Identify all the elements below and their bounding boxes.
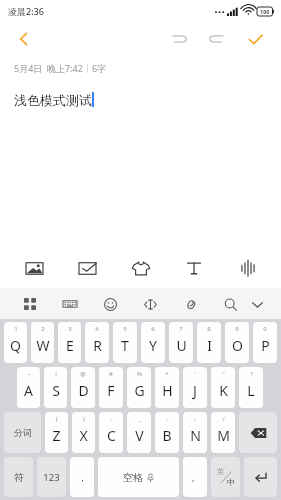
- button[interactable]: 。: [183, 457, 207, 497]
- staticText: J: [193, 381, 197, 400]
- staticText: /: [222, 415, 225, 423]
- button[interactable]: @: [71, 367, 95, 408]
- staticText: 0: [263, 325, 267, 333]
- staticText: 6: [151, 325, 155, 333]
- button[interactable]: Back: [8, 23, 40, 55]
- button[interactable]: Language: [211, 457, 240, 497]
- button[interactable]: Collapse keyboard: [243, 290, 271, 318]
- staticText: P: [261, 336, 270, 355]
- staticText: 5月4日 晚上7:42: [14, 62, 83, 74]
- button[interactable]: (: [45, 412, 68, 453]
- button[interactable]: :: [155, 412, 179, 453]
- button[interactable]: Search: [210, 289, 250, 319]
- button[interactable]: 9: [225, 322, 249, 363]
- button[interactable]: Done: [239, 23, 271, 55]
- button[interactable]: ": [211, 367, 235, 408]
- button[interactable]: Backspace: [239, 412, 277, 453]
- staticText: 7: [179, 325, 183, 333]
- staticText: ': [194, 370, 196, 378]
- button[interactable]: 2: [31, 322, 54, 363]
- button[interactable]: Text format: [174, 248, 214, 288]
- staticText: 9: [235, 325, 239, 333]
- staticText: Y: [149, 336, 157, 355]
- staticText: 123: [43, 471, 60, 484]
- button[interactable]: 空格: [98, 457, 179, 497]
- staticText: 1: [14, 325, 18, 333]
- button[interactable]: ~: [17, 367, 40, 408]
- staticText: 凌晨2:36: [8, 5, 44, 17]
- staticText: C: [107, 426, 116, 445]
- button[interactable]: *: [155, 367, 179, 408]
- button[interactable]: %: [127, 367, 151, 408]
- button[interactable]: Emoji: [90, 289, 130, 319]
- staticText: ，: [78, 472, 87, 483]
- staticText: ?: [250, 370, 253, 378]
- button[interactable]: Checklist: [67, 248, 107, 288]
- staticText: O: [232, 336, 243, 355]
- button[interactable]: Undo: [163, 23, 195, 55]
- button[interactable]: -: [99, 412, 123, 453]
- staticText: 4: [95, 325, 99, 333]
- button[interactable]: ，: [70, 457, 94, 497]
- staticText: 符: [14, 471, 24, 484]
- button[interactable]: #: [99, 367, 123, 408]
- staticText: ;: [194, 415, 196, 423]
- button[interactable]: 6: [141, 322, 165, 363]
- button[interactable]: 3: [58, 322, 81, 363]
- staticText: *: [165, 370, 169, 378]
- staticText: 2: [41, 325, 45, 333]
- button[interactable]: Redo: [201, 23, 233, 55]
- staticText: F: [107, 381, 115, 400]
- staticText: 6字: [92, 62, 107, 74]
- staticText: 100: [260, 8, 270, 15]
- staticText: _: [138, 415, 141, 423]
- button[interactable]: _: [127, 412, 151, 453]
- button[interactable]: Clipboard: [170, 289, 210, 319]
- staticText: 3: [68, 325, 72, 333]
- staticText: S: [52, 381, 60, 400]
- staticText: 浅色模式测试: [14, 92, 92, 108]
- button[interactable]: Enter: [244, 457, 277, 497]
- button[interactable]: ': [183, 367, 207, 408]
- staticText: I: [207, 336, 212, 355]
- button[interactable]: ?: [239, 367, 263, 408]
- staticText: (: [56, 415, 58, 423]
- staticText: 分词: [14, 427, 32, 438]
- staticText: N: [190, 426, 201, 445]
- staticText: E: [66, 336, 74, 355]
- staticText: ): [83, 415, 85, 423]
- button[interactable]: 8: [197, 322, 221, 363]
- button[interactable]: ): [72, 412, 95, 453]
- staticText: W: [36, 336, 50, 355]
- staticText: 。: [191, 472, 200, 483]
- staticText: K: [219, 381, 228, 400]
- staticText: R: [93, 336, 102, 355]
- button[interactable]: Menu: [10, 289, 50, 319]
- staticText: V: [135, 426, 144, 445]
- button[interactable]: Audio: [228, 248, 268, 288]
- staticText: A: [24, 381, 33, 400]
- button[interactable]: /: [211, 412, 235, 453]
- button[interactable]: 123: [37, 457, 66, 497]
- staticText: G: [134, 381, 145, 400]
- staticText: T: [121, 336, 129, 355]
- button[interactable]: 4: [85, 322, 109, 363]
- button[interactable]: 0: [253, 322, 277, 363]
- button[interactable]: Insert image: [14, 248, 54, 288]
- button[interactable]: Keyboard: [50, 289, 90, 319]
- button[interactable]: 1: [4, 322, 27, 363]
- staticText: X: [79, 426, 88, 445]
- button[interactable]: ;: [183, 412, 207, 453]
- button[interactable]: Cursor: [130, 289, 170, 319]
- button[interactable]: 7: [169, 322, 193, 363]
- staticText: ": [222, 370, 225, 378]
- button[interactable]: 分词: [4, 412, 41, 453]
- staticText: 8: [207, 325, 211, 333]
- button[interactable]: !: [44, 367, 67, 408]
- staticText: ~: [27, 370, 31, 378]
- button[interactable]: Style: [121, 248, 161, 288]
- staticText: M: [217, 426, 230, 445]
- button[interactable]: 5: [113, 322, 137, 363]
- staticText: 中: [227, 477, 235, 487]
- button[interactable]: 符: [4, 457, 33, 497]
